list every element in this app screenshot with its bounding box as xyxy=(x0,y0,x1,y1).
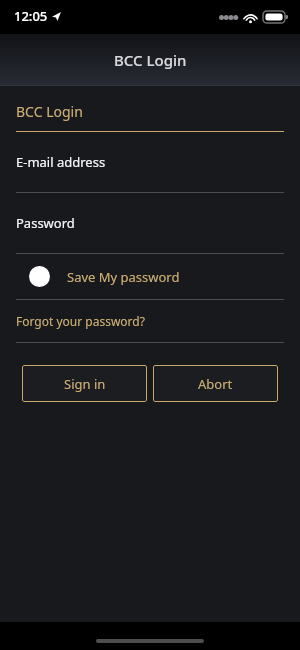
button[interactable]: Forgot your password? xyxy=(0,300,300,342)
button[interactable]: Save my password toggle xyxy=(0,254,300,299)
button[interactable]: Abort xyxy=(153,365,278,402)
staticText: 12:05 xyxy=(14,7,48,25)
other: Save my password toggle xyxy=(29,266,50,287)
button[interactable]: E-mail address xyxy=(0,132,300,192)
staticText: Password xyxy=(16,214,75,232)
staticText: Forgot your password? xyxy=(16,313,145,329)
staticText: BCC Login xyxy=(16,102,83,121)
staticText: E-mail address xyxy=(16,153,106,171)
staticText: BCC Login xyxy=(114,50,187,70)
staticText: Sign in xyxy=(64,375,106,393)
button[interactable]: Password xyxy=(0,193,300,253)
button[interactable]: Sign in xyxy=(22,365,147,402)
staticText: Save My password xyxy=(67,268,180,286)
staticText: Abort xyxy=(198,375,233,393)
